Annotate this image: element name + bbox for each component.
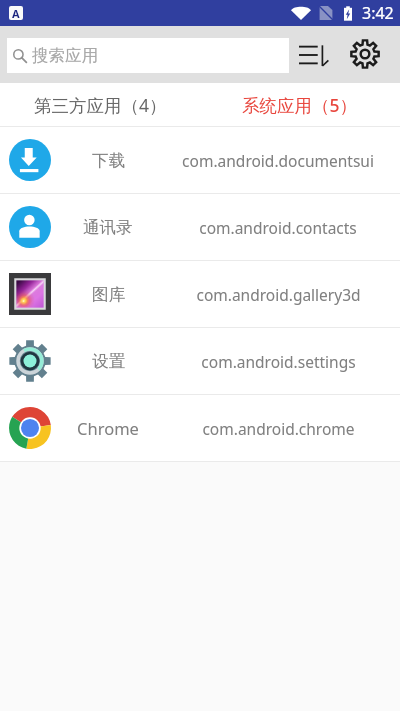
staticText: 第三方应用（4） bbox=[34, 93, 167, 117]
staticText: 图库 bbox=[92, 284, 125, 305]
staticText: 下载 bbox=[92, 150, 125, 171]
button[interactable]: 搜索应用 bbox=[7, 38, 289, 73]
button[interactable]: Chrome bbox=[0, 395, 400, 461]
staticText: 搜索应用 bbox=[32, 45, 98, 66]
button[interactable]: 下载 bbox=[0, 127, 400, 193]
staticText: 系统应用（5） bbox=[242, 93, 358, 117]
staticText: A bbox=[12, 6, 20, 20]
button[interactable]: Settings bbox=[344, 33, 386, 75]
button[interactable]: 通讯录 bbox=[0, 194, 400, 260]
staticText: com.android.contacts bbox=[199, 217, 357, 238]
staticText: com.android.settings bbox=[201, 351, 356, 372]
staticText: 设置 bbox=[92, 351, 125, 372]
button[interactable]: 设置 bbox=[0, 328, 400, 394]
button[interactable]: 系统应用（5） bbox=[200, 83, 400, 126]
staticText: 3:42 bbox=[362, 2, 394, 24]
button[interactable]: 图库 bbox=[0, 261, 400, 327]
staticText: com.android.chrome bbox=[202, 418, 355, 439]
staticText: com.android.documentsui bbox=[182, 150, 374, 171]
staticText: Chrome bbox=[77, 417, 139, 439]
staticText: 通讯录 bbox=[83, 217, 133, 238]
button[interactable]: Sort bbox=[291, 34, 333, 76]
button[interactable]: 第三方应用（4） bbox=[0, 83, 200, 126]
staticText: com.android.gallery3d bbox=[196, 284, 361, 305]
